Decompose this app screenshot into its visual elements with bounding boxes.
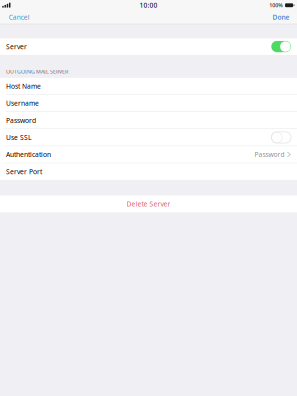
staticText: Password <box>6 116 36 125</box>
staticText: Authentication <box>6 150 51 159</box>
button[interactable]: Authentication <box>0 146 297 163</box>
staticText: Server Port <box>6 167 42 176</box>
button[interactable]: Delete Server <box>0 195 297 212</box>
staticText: 10:00 <box>139 1 157 10</box>
staticText: Username <box>6 99 39 108</box>
button[interactable]: Cancel <box>6 11 33 24</box>
staticText: Host Name <box>6 82 41 91</box>
staticText: Done <box>273 13 290 22</box>
staticText: 100% <box>269 2 283 9</box>
staticText: Cancel <box>9 13 30 22</box>
button[interactable]: Done <box>270 11 292 24</box>
staticText: Delete Server <box>126 199 170 208</box>
staticText: OUTGOING MAIL SERVER <box>6 68 68 75</box>
staticText: Use SSL <box>6 133 31 142</box>
staticText: Password <box>254 150 284 159</box>
staticText: Server <box>6 42 27 51</box>
